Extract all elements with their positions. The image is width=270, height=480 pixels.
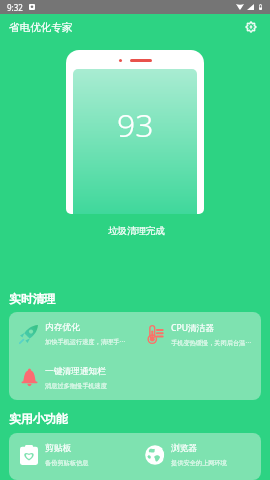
button[interactable]: 剪贴板 — [9, 433, 135, 477]
staticText: 内存优化 — [45, 322, 80, 333]
staticText: 消息过多拖慢手机速度 — [45, 382, 130, 390]
staticText: 手机变热缓慢，关闭后台温度高 — [171, 339, 256, 347]
button[interactable]: 内存优化 — [9, 312, 135, 356]
staticText: 提供安全的上网环境 — [171, 459, 256, 467]
staticText: 一键清理通知栏 — [45, 366, 106, 377]
button[interactable]: 一键清理通知栏 — [9, 356, 135, 400]
button[interactable]: 浏览器 — [135, 433, 261, 477]
staticText: 剪贴板 — [45, 443, 72, 454]
staticText: 备份剪贴板信息 — [45, 459, 130, 467]
staticText: 实用小功能 — [9, 412, 68, 427]
staticText: 加快手机运行速度，清理手机垃圾 — [45, 338, 130, 346]
staticText: CPU清洁器 — [171, 322, 215, 334]
staticText: 浏览器 — [171, 443, 198, 454]
staticText: 9:32 — [7, 2, 23, 13]
button[interactable]: Settings — [239, 15, 263, 39]
staticText: 93 — [117, 103, 154, 147]
staticText: 垃圾清理完成 — [108, 225, 165, 237]
button[interactable]: CPU清洁器 — [135, 312, 261, 356]
staticText: 实时清理 — [9, 292, 56, 307]
staticText: 省电优化专家 — [9, 21, 73, 34]
